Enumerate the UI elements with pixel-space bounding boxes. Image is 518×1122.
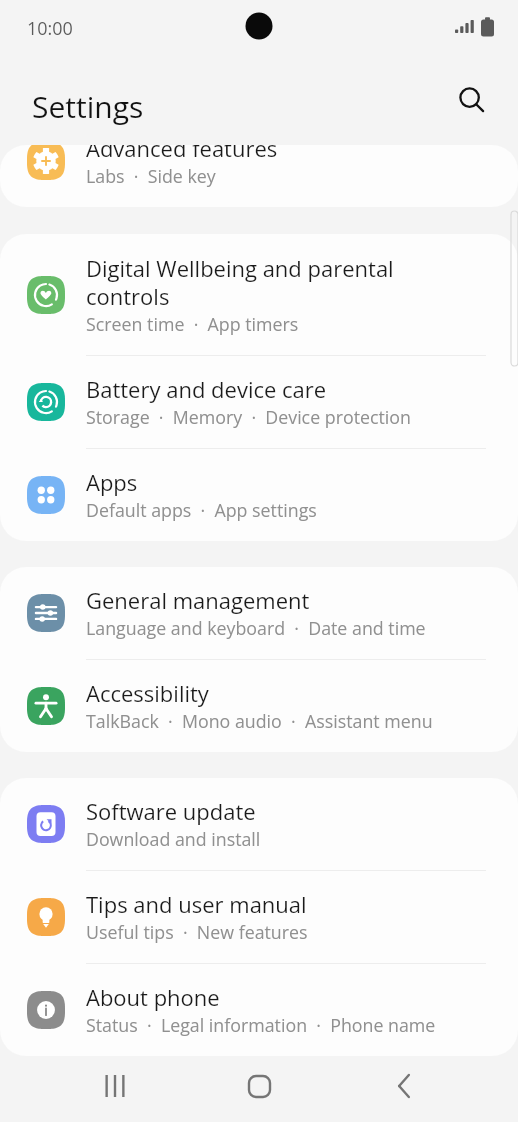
button[interactable]: Battery and device care xyxy=(0,356,518,448)
button[interactable]: Advanced features xyxy=(0,145,518,207)
staticText: Accessibility xyxy=(86,680,209,708)
staticText: Labs · Side key xyxy=(86,164,216,188)
staticText: 10:00 xyxy=(27,16,73,41)
staticText: Screen time · App timers xyxy=(86,312,299,336)
staticText: Tips and user manual xyxy=(86,891,307,919)
button[interactable]: Digital Wellbeing and parental controls xyxy=(0,234,518,355)
button[interactable]: General management xyxy=(0,567,518,659)
button[interactable]: Home xyxy=(229,1056,289,1116)
staticText: Default apps · App settings xyxy=(86,498,317,522)
button[interactable]: Apps xyxy=(0,449,518,541)
staticText: TalkBack · Mono audio · Assistant menu xyxy=(86,709,433,733)
button[interactable]: Recents xyxy=(85,1056,145,1116)
staticText: Advanced features xyxy=(86,145,278,163)
staticText: Storage · Memory · Device protection xyxy=(86,405,411,429)
button[interactable]: Back xyxy=(374,1056,434,1116)
staticText: Status · Legal information · Phone name xyxy=(86,1013,436,1037)
staticText: Digital Wellbeing and parental controls xyxy=(86,255,394,311)
staticText: Language and keyboard · Date and time xyxy=(86,616,426,640)
button[interactable]: Software update xyxy=(0,778,518,870)
staticText: General management xyxy=(86,587,310,615)
button[interactable]: About phone xyxy=(0,964,518,1056)
staticText: Apps xyxy=(86,469,138,497)
button[interactable]: Accessibility xyxy=(0,660,518,752)
button[interactable]: Tips and user manual xyxy=(0,871,518,963)
staticText: Download and install xyxy=(86,827,261,851)
staticText: Battery and device care xyxy=(86,376,327,404)
staticText: Useful tips · New features xyxy=(86,920,308,944)
staticText: Software update xyxy=(86,798,256,826)
button[interactable]: Search xyxy=(446,74,498,126)
staticText: About phone xyxy=(86,984,220,1012)
staticText: Settings xyxy=(32,86,144,127)
